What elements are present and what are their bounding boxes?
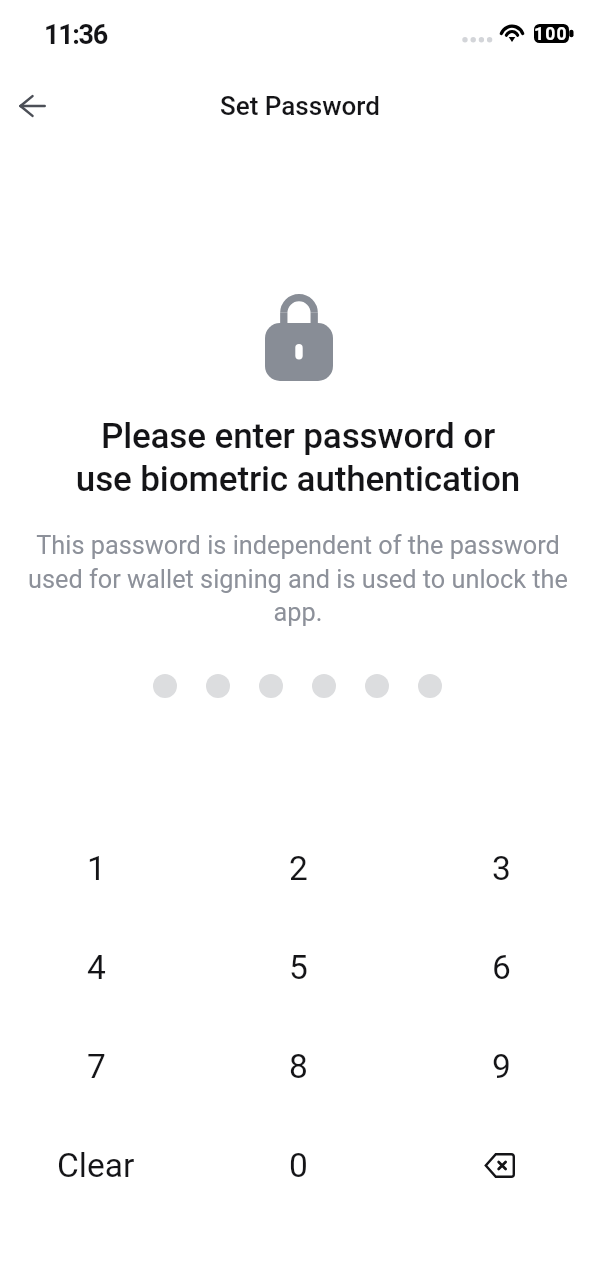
staticText: 8 bbox=[289, 1047, 308, 1086]
staticText: 7 bbox=[87, 1047, 106, 1086]
staticText: This password is independent of the pass… bbox=[23, 531, 573, 627]
button[interactable]: 6 bbox=[400, 918, 600, 1017]
button[interactable]: Clear bbox=[0, 1116, 197, 1215]
staticText: 0 bbox=[289, 1146, 308, 1185]
staticText: 5 bbox=[289, 948, 308, 987]
button[interactable]: 7 bbox=[0, 1017, 197, 1116]
staticText: 11:36 bbox=[44, 19, 107, 51]
staticText: 6 bbox=[492, 948, 511, 987]
button[interactable]: Back bbox=[2, 76, 62, 136]
button[interactable]: 9 bbox=[400, 1017, 600, 1116]
button[interactable]: Backspace bbox=[400, 1116, 600, 1215]
staticText: Set Password bbox=[220, 91, 380, 121]
button[interactable]: 5 bbox=[197, 918, 400, 1017]
staticText: 2 bbox=[289, 849, 308, 888]
button[interactable]: 1 bbox=[0, 819, 197, 918]
staticText: 9 bbox=[492, 1047, 511, 1086]
button[interactable]: 2 bbox=[197, 819, 400, 918]
other: Backspace bbox=[484, 1153, 515, 1178]
staticText: Please enter password or use biometric a… bbox=[0, 416, 598, 500]
button[interactable]: 3 bbox=[400, 819, 600, 918]
button[interactable]: 8 bbox=[197, 1017, 400, 1116]
button[interactable]: 4 bbox=[0, 918, 197, 1017]
button[interactable]: 0 bbox=[197, 1116, 400, 1215]
staticText: Clear bbox=[57, 1146, 135, 1185]
staticText: 1 bbox=[87, 849, 106, 888]
staticText: 100 bbox=[534, 24, 568, 43]
staticText: 3 bbox=[492, 849, 511, 888]
staticText: 4 bbox=[87, 948, 106, 987]
